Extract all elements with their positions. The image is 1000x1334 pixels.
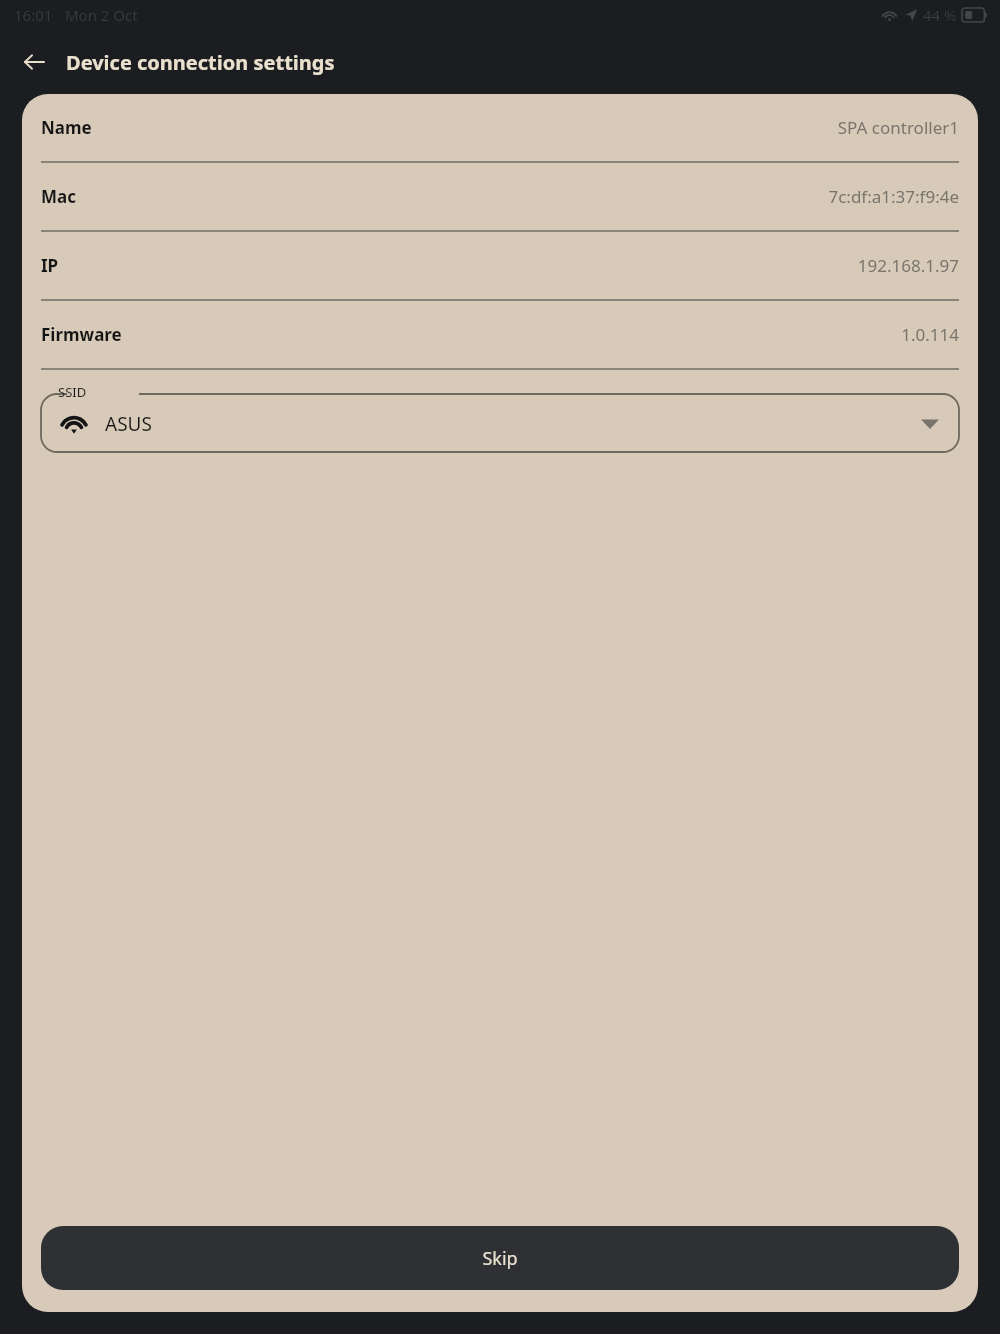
- staticText: Firmware: [41, 323, 122, 346]
- button[interactable]: Back: [10, 38, 58, 86]
- button[interactable]: Firmware: [22, 301, 978, 368]
- staticText: Mac: [41, 185, 76, 208]
- staticText: 1.0.114: [901, 323, 959, 346]
- staticText: 44 %: [923, 5, 957, 25]
- button[interactable]: ASUS: [41, 394, 959, 454]
- staticText: SPA controller1: [837, 116, 959, 139]
- staticText: SSID: [58, 383, 87, 401]
- staticText: Skip: [482, 1246, 518, 1271]
- staticText: Device connection settings: [66, 49, 335, 76]
- staticText: Mon 2 Oct: [65, 5, 138, 25]
- button[interactable]: IP: [22, 232, 978, 299]
- staticText: IP: [41, 254, 59, 277]
- button[interactable]: Name: [22, 94, 978, 161]
- button[interactable]: Mac: [22, 163, 978, 230]
- staticText: ASUS: [105, 411, 152, 437]
- staticText: 192.168.1.97: [857, 254, 959, 277]
- staticText: 7c:df:a1:37:f9:4e: [828, 185, 959, 208]
- staticText: 16:01: [14, 5, 53, 25]
- staticText: Name: [41, 116, 92, 139]
- button[interactable]: Skip: [41, 1226, 959, 1290]
